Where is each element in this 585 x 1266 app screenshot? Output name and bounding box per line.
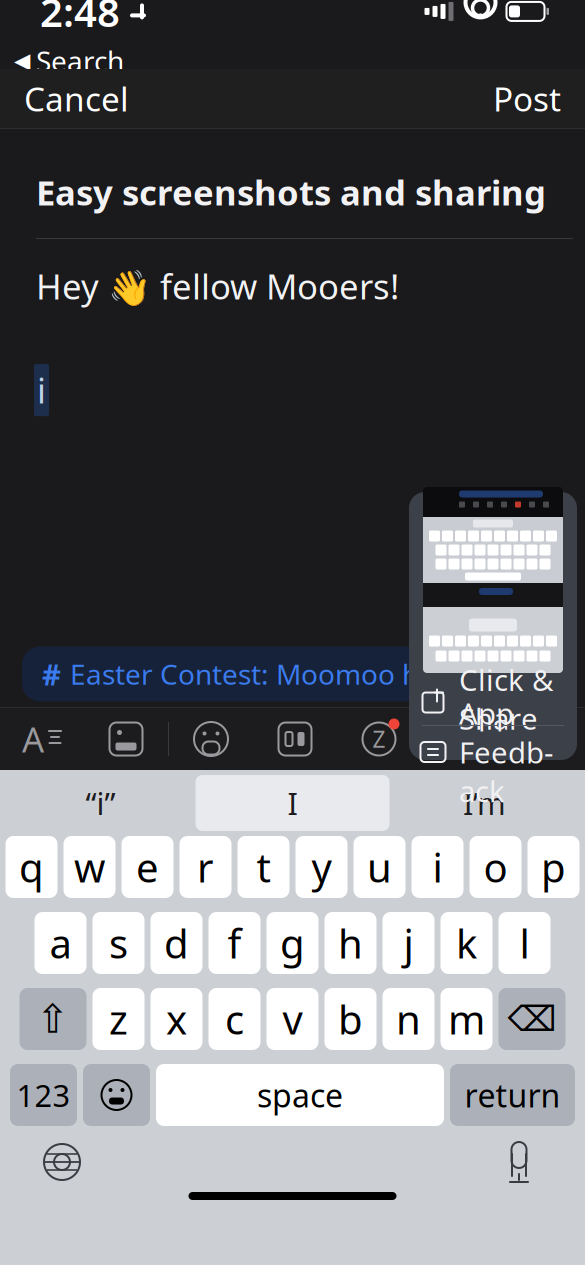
staticText: “i” (85, 783, 115, 823)
button[interactable]: j (382, 912, 434, 974)
staticText: u (367, 840, 392, 893)
staticText: p (541, 840, 566, 893)
staticText: x (166, 992, 187, 1045)
staticText: a (49, 916, 71, 969)
button[interactable]: q (5, 836, 57, 898)
staticText: space (257, 1074, 343, 1116)
staticText: App Feedback (459, 694, 553, 810)
button[interactable]: p (527, 836, 579, 898)
staticText: g (280, 916, 305, 969)
button[interactable]: t (237, 836, 289, 898)
staticText: l (519, 916, 529, 969)
staticText: t (256, 840, 270, 893)
staticText: I’m (463, 783, 506, 823)
button[interactable]: s (92, 912, 144, 974)
button[interactable]: Insert image (84, 709, 168, 769)
button[interactable]: 123 (10, 1064, 77, 1126)
staticText: Easter Contest: Moomoo hidden ... (70, 655, 524, 693)
button[interactable]: Emoji (169, 709, 253, 769)
button[interactable]: Emoji keyboard (83, 1064, 150, 1126)
button[interactable]: h (324, 912, 376, 974)
staticText: y (311, 840, 331, 893)
button[interactable]: Post (469, 61, 585, 136)
button[interactable]: Cancel (0, 61, 153, 136)
button[interactable]: a (34, 912, 86, 974)
staticText: 2:48 (40, 0, 120, 38)
staticText: s (109, 916, 128, 969)
button[interactable]: g (266, 912, 318, 974)
button[interactable]: “i” (5, 775, 195, 831)
staticText: 123 (16, 1075, 70, 1115)
button[interactable]: x (150, 988, 202, 1050)
button[interactable]: ◀ (0, 40, 124, 81)
staticText: A (22, 716, 44, 762)
staticText: Click & Share (459, 660, 553, 738)
staticText: ◀ (14, 48, 30, 73)
staticText: q (19, 840, 44, 893)
staticText: o (483, 840, 507, 893)
staticText: n (396, 992, 421, 1045)
button[interactable]: # (22, 646, 544, 701)
staticText: Z (372, 724, 385, 754)
staticText: w (74, 840, 105, 893)
button[interactable]: Click & Share (409, 673, 577, 725)
staticText: j (403, 916, 413, 969)
button[interactable]: l (498, 912, 550, 974)
staticText: # (42, 654, 61, 693)
button[interactable]: r (179, 836, 231, 898)
staticText: i (432, 840, 442, 893)
button[interactable]: f (208, 912, 260, 974)
staticText: h (338, 916, 363, 969)
button[interactable]: More options (337, 709, 421, 769)
staticText: Cancel (24, 76, 129, 121)
button[interactable]: Text format (0, 709, 84, 769)
button[interactable]: w (63, 836, 115, 898)
button[interactable]: App Feedback (409, 726, 577, 778)
button[interactable]: Add stock (253, 709, 337, 769)
button[interactable]: v (266, 988, 318, 1050)
button[interactable]: o (469, 836, 521, 898)
staticText: c (225, 992, 244, 1045)
button[interactable]: return (450, 1064, 575, 1126)
button[interactable]: i (411, 836, 463, 898)
button[interactable]: c (208, 988, 260, 1050)
staticText: I (287, 783, 297, 823)
staticText: i (37, 367, 46, 413)
staticText: z (109, 992, 128, 1045)
button[interactable]: space (156, 1064, 444, 1126)
staticText: Post (493, 76, 561, 121)
staticText: d (164, 916, 189, 969)
button[interactable]: n (382, 988, 434, 1050)
staticText: Hey 👋 fellow Mooers! (36, 263, 399, 309)
staticText: ⌫ (507, 999, 556, 1039)
button[interactable]: d (150, 912, 202, 974)
button[interactable]: Dictate (495, 1137, 543, 1187)
button[interactable]: I (195, 775, 389, 831)
staticText: Search (36, 42, 124, 79)
button[interactable]: u (353, 836, 405, 898)
staticText: Easy screenshots and sharing (36, 169, 546, 215)
staticText: ⇧ (36, 996, 70, 1042)
button[interactable]: I’m (389, 775, 579, 831)
button[interactable]: b (324, 988, 376, 1050)
button[interactable]: Delete (498, 988, 565, 1050)
staticText: m (448, 992, 485, 1045)
staticText: e (136, 840, 159, 893)
staticText: v (282, 992, 302, 1045)
button[interactable]: m (440, 988, 492, 1050)
staticText: k (456, 916, 477, 969)
staticText: b (338, 992, 363, 1045)
button[interactable]: y (295, 836, 347, 898)
staticText: f (227, 916, 241, 969)
staticText: r (197, 840, 214, 893)
button[interactable]: Shift (19, 988, 86, 1050)
button[interactable]: k (440, 912, 492, 974)
button[interactable]: z (92, 988, 144, 1050)
button[interactable]: Switch keyboard (38, 1138, 86, 1186)
staticText: return (464, 1074, 560, 1116)
button[interactable]: e (121, 836, 173, 898)
